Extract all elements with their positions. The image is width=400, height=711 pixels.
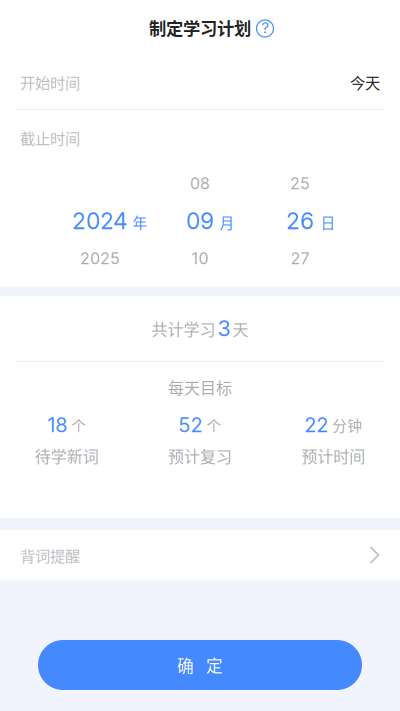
staticText: 确 定 (177, 653, 223, 677)
staticText: 26 (286, 207, 314, 235)
staticText: 待学新词 (35, 444, 99, 467)
staticText: 22 (304, 413, 328, 437)
staticText: 截止时间 (20, 126, 80, 149)
staticText: 分钟 (332, 414, 362, 435)
staticText: 天 (232, 317, 248, 340)
staticText: 每天目标 (168, 375, 232, 399)
staticText: 25 (290, 174, 310, 193)
staticText: 年 (132, 211, 147, 233)
staticText: 个 (71, 414, 86, 435)
button[interactable]: Help (254, 17, 276, 39)
button[interactable]: 开始时间 (0, 55, 400, 109)
staticText: 09 (186, 207, 214, 235)
staticText: 2024 (72, 207, 128, 235)
staticText: ? (261, 19, 268, 37)
staticText: 18 (47, 413, 67, 437)
staticText: 今天 (350, 71, 380, 93)
staticText: 共计学习 (151, 317, 215, 340)
staticText: 日 (320, 211, 335, 233)
staticText: 个 (206, 414, 221, 435)
staticText: 背词提醒 (20, 544, 80, 566)
staticText: 10 (191, 249, 208, 268)
staticText: 预计复习 (168, 444, 232, 467)
staticText: 2025 (80, 249, 120, 268)
staticText: 08 (190, 174, 210, 193)
staticText: 27 (290, 249, 309, 268)
staticText: 52 (178, 413, 202, 437)
button[interactable]: 确 定 (38, 640, 362, 690)
staticText: 制定学习计划 (149, 15, 251, 40)
button[interactable]: 背词提醒 (0, 530, 400, 580)
staticText: 月 (219, 211, 234, 233)
staticText: 预计时间 (301, 444, 365, 467)
staticText: 3 (217, 316, 230, 341)
staticText: 开始时间 (20, 71, 80, 93)
